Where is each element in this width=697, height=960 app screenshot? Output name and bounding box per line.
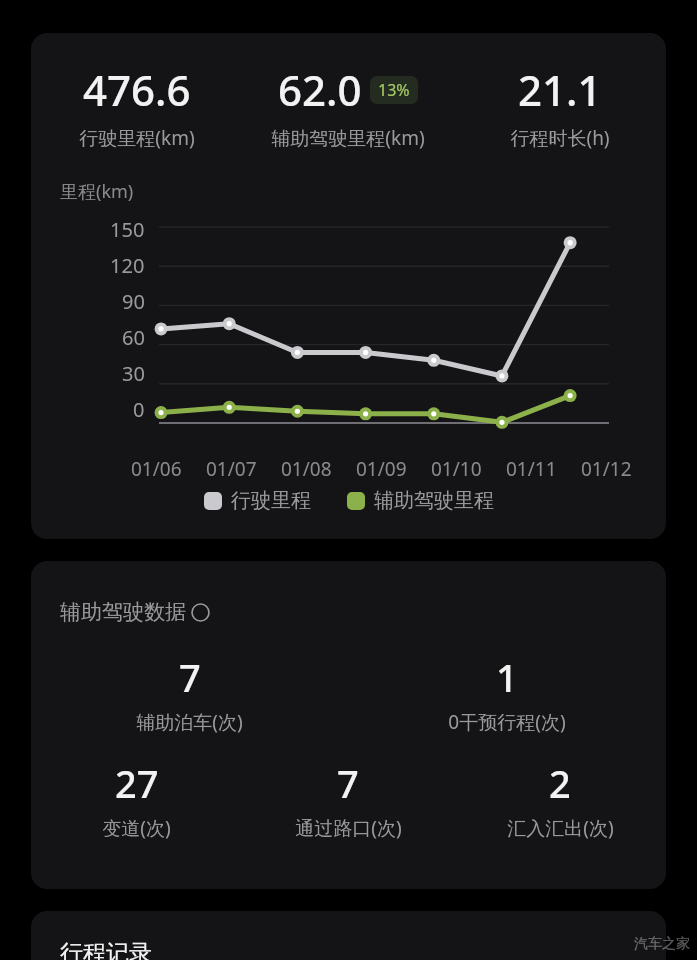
- staticText: 2: [549, 757, 571, 809]
- staticText: 150: [110, 216, 145, 243]
- button[interactable]: 2: [454, 757, 666, 841]
- staticText: 21.1: [518, 61, 602, 118]
- button[interactable]: 行驶里程: [204, 488, 311, 513]
- staticText: 01/09: [356, 456, 407, 482]
- button[interactable]: 1: [348, 651, 666, 735]
- staticText: 7: [337, 757, 359, 809]
- staticText: 90: [122, 288, 145, 315]
- staticText: 通过路口(次): [295, 815, 402, 841]
- staticText: 01/12: [581, 456, 632, 482]
- staticText: 汇入汇出(次): [507, 815, 614, 841]
- staticText: 120: [110, 252, 145, 279]
- staticText: 辅助驾驶里程: [374, 488, 494, 513]
- staticText: 01/06: [131, 456, 182, 482]
- button[interactable]: 27: [31, 757, 242, 841]
- staticText: 行驶里程: [231, 488, 311, 513]
- staticText: 行程记录: [60, 939, 152, 960]
- staticText: 01/07: [206, 456, 257, 482]
- staticText: 01/11: [506, 456, 557, 482]
- staticText: 7: [179, 651, 201, 703]
- staticText: 汽车之家: [634, 935, 690, 953]
- staticText: 变道(次): [102, 815, 171, 841]
- staticText: 里程(km): [60, 179, 134, 204]
- staticText: 1: [496, 651, 518, 703]
- staticText: 30: [122, 360, 145, 387]
- other: 说明: [191, 603, 210, 622]
- staticText: 01/10: [431, 456, 482, 482]
- staticText: 62.0: [278, 61, 362, 118]
- staticText: 60: [122, 324, 145, 351]
- staticText: 476.6: [83, 61, 191, 118]
- staticText: 行程时长(h): [510, 125, 610, 151]
- button[interactable]: 辅助驾驶数据: [31, 561, 666, 889]
- button[interactable]: 辅助驾驶里程: [347, 488, 494, 513]
- button[interactable]: 7: [242, 757, 454, 841]
- staticText: 辅助驾驶里程(km): [271, 125, 425, 151]
- button[interactable]: 7: [31, 651, 348, 735]
- staticText: 辅助驾驶数据: [60, 599, 186, 625]
- staticText: 27: [115, 757, 159, 809]
- button[interactable]: 行程记录: [31, 911, 666, 960]
- button[interactable]: 辅助驾驶数据: [60, 599, 210, 625]
- staticText: 辅助泊车(次): [136, 709, 243, 735]
- staticText: 13%: [378, 79, 410, 101]
- staticText: 行驶里程(km): [79, 125, 195, 151]
- staticText: 01/08: [281, 456, 332, 482]
- staticText: 0: [133, 396, 145, 423]
- button[interactable]: 476.6: [31, 33, 666, 539]
- staticText: 0干预行程(次): [448, 709, 566, 735]
